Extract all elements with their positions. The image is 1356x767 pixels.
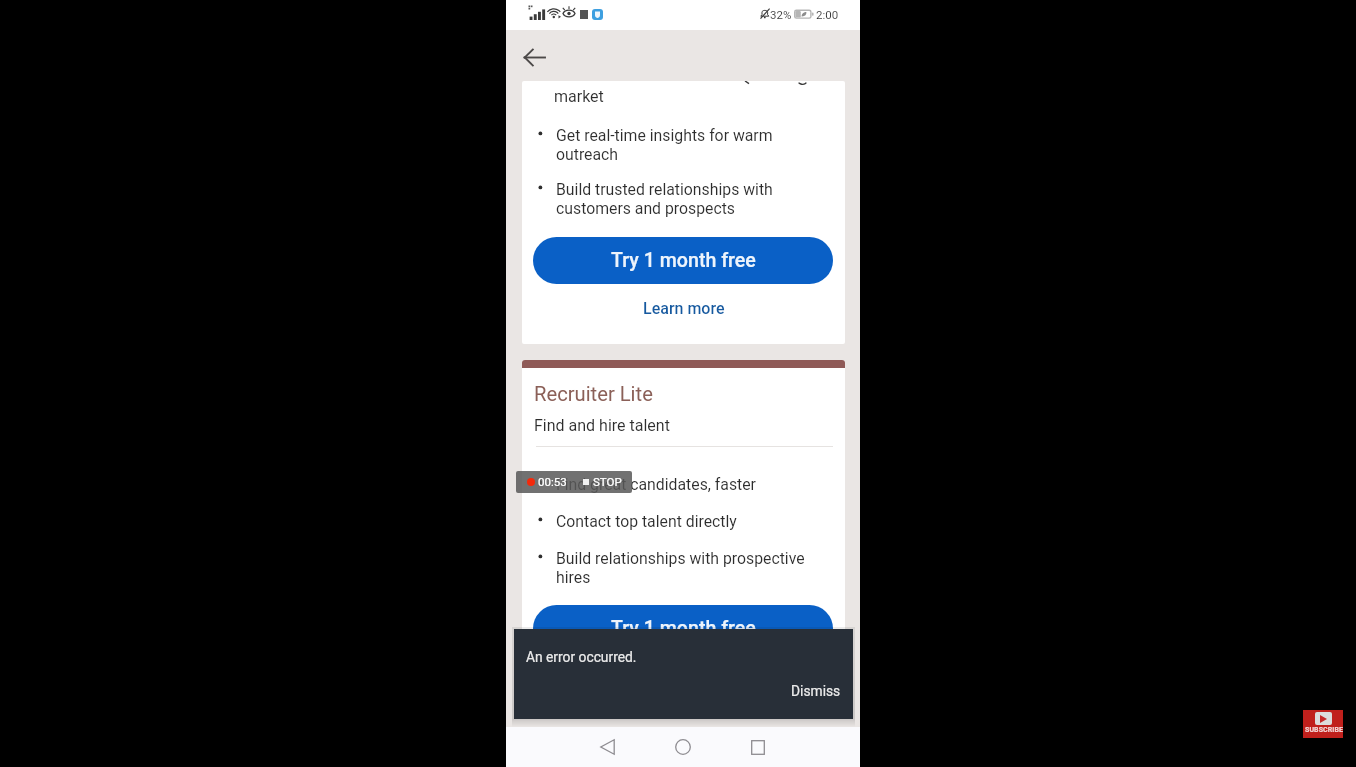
staticText: Build trusted relationships with custome… xyxy=(556,180,822,218)
button[interactable]: Home xyxy=(665,729,701,765)
staticText: Find and hire talent xyxy=(534,416,670,435)
staticText: Learn more xyxy=(643,299,725,318)
staticText: SUBSCRIBE xyxy=(1305,726,1345,734)
staticText: Build relationships with prospective hir… xyxy=(556,549,822,587)
staticText: STOP xyxy=(593,475,622,488)
button[interactable]: Try 1 month free xyxy=(533,237,833,284)
staticText: Try 1 month free xyxy=(611,617,756,640)
staticText: Find great candidates, faster xyxy=(556,475,756,494)
button[interactable]: Dismiss xyxy=(783,677,849,705)
button[interactable]: Back xyxy=(589,729,625,765)
staticText: market xyxy=(554,87,604,106)
button[interactable]: Navigate up xyxy=(516,39,552,75)
staticText: Get real-time insights for warm outreach xyxy=(556,126,822,164)
staticText: Recruiter Lite xyxy=(534,382,653,406)
staticText: 2:00 xyxy=(816,8,839,21)
staticText: 32% xyxy=(770,8,792,21)
staticText: Contact top talent directly xyxy=(556,512,737,531)
button[interactable]: Try 1 month free xyxy=(533,605,833,652)
staticText: An error occurred. xyxy=(526,649,637,665)
staticText: Dismiss xyxy=(791,683,841,699)
button[interactable]: Learn more xyxy=(522,294,845,322)
button[interactable]: Subscribe xyxy=(1303,710,1343,738)
staticText: Try 1 month free xyxy=(611,249,756,272)
staticText: 00:53 xyxy=(538,475,567,488)
button[interactable]: Stop recording xyxy=(516,471,632,493)
button[interactable]: Recent apps xyxy=(740,729,776,765)
